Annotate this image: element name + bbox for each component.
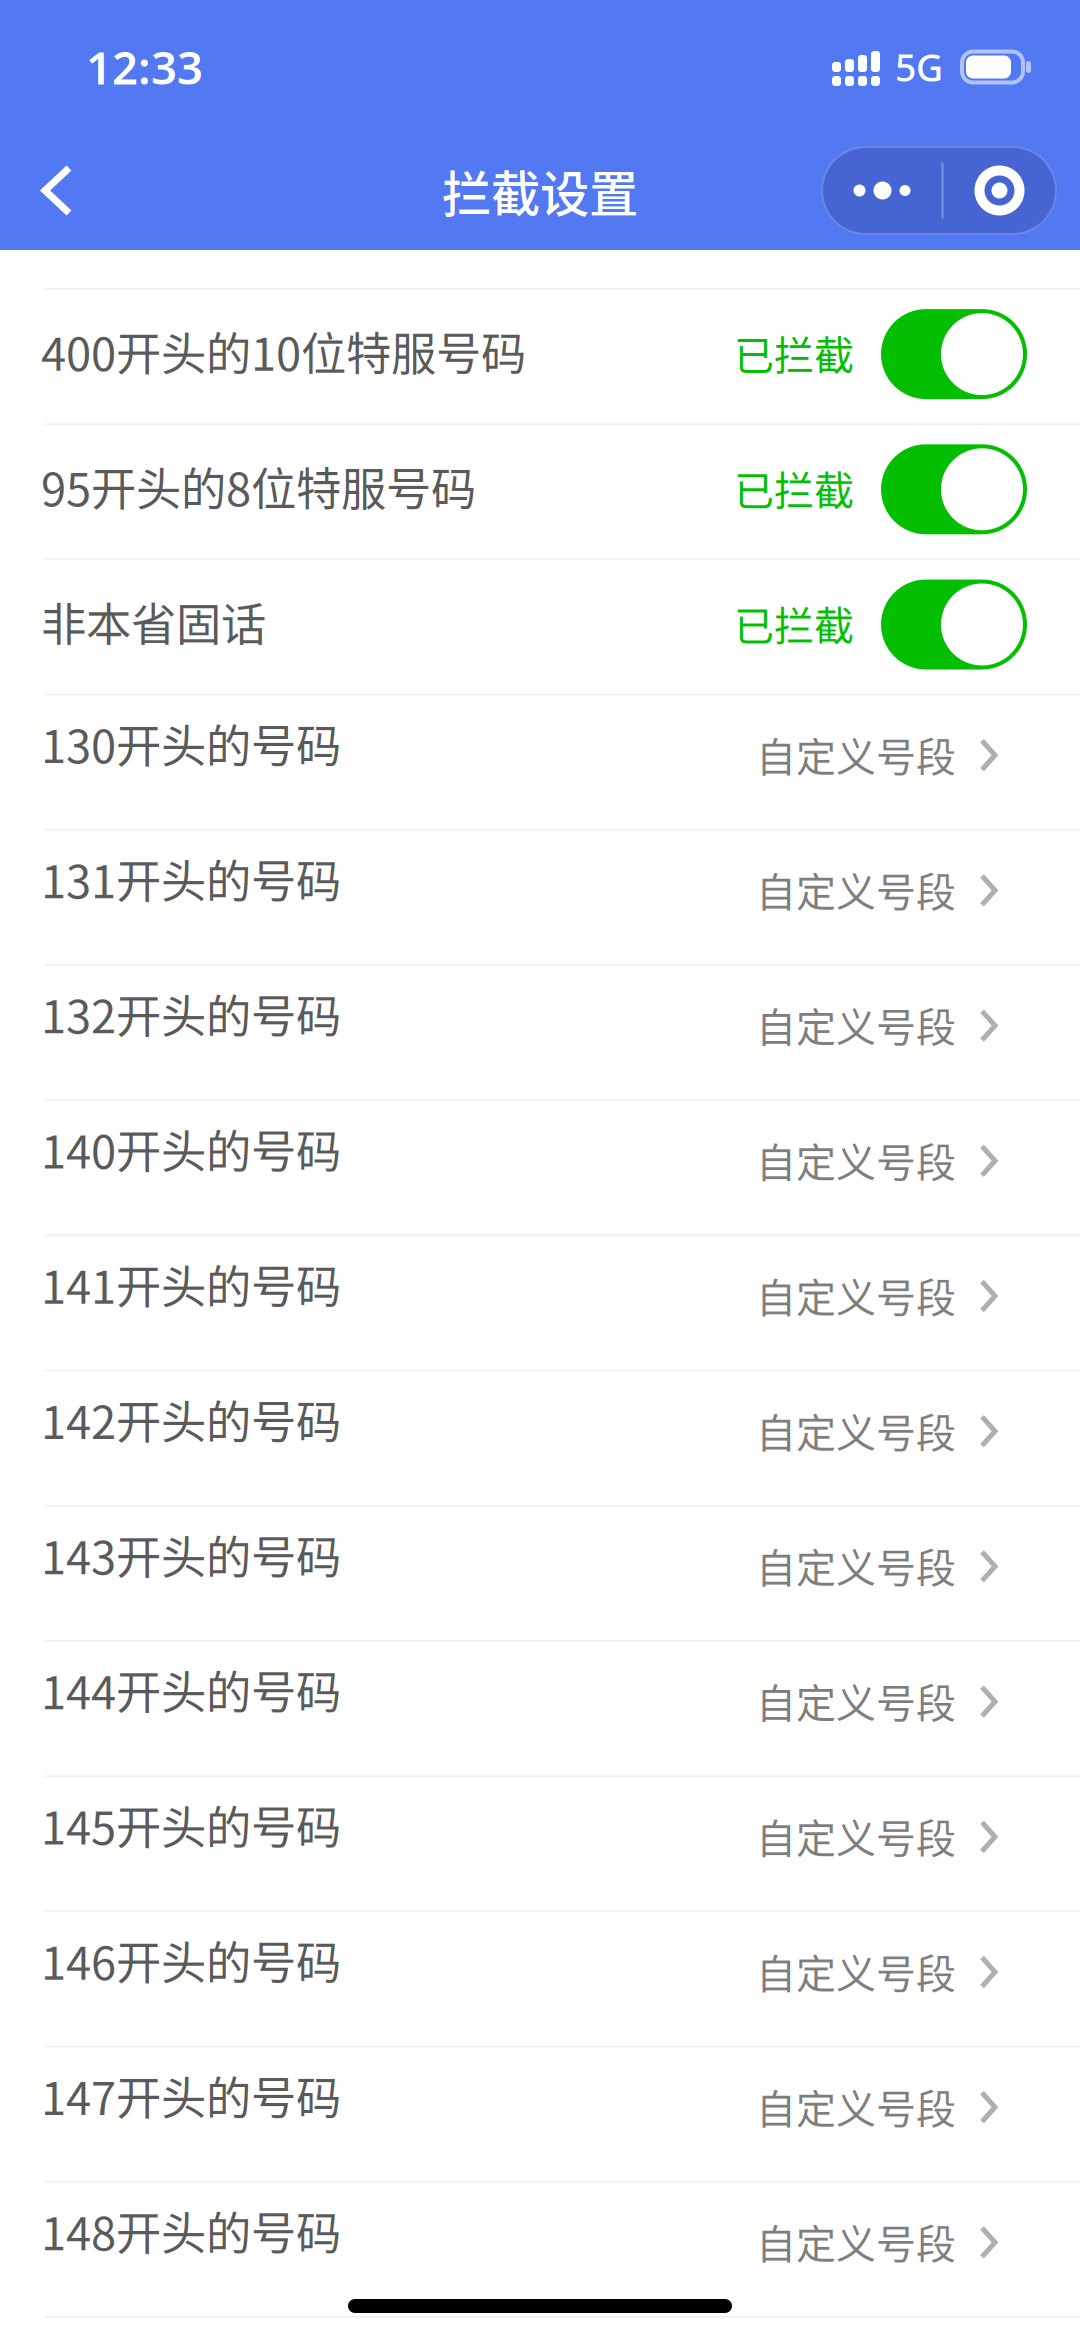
- staticText: 95开头的8位特服号码: [41, 453, 476, 519]
- button[interactable]: 147开头的号码: [0, 2048, 1080, 2181]
- staticText: 5G: [895, 42, 943, 92]
- button[interactable]: 148开头的号码: [0, 2183, 1080, 2316]
- staticText: 自定义号段: [756, 860, 956, 918]
- staticText: 12:33: [86, 37, 203, 97]
- button[interactable]: 140开头的号码: [0, 1101, 1080, 1234]
- staticText: 自定义号段: [756, 2212, 956, 2270]
- button[interactable]: 132开头的号码: [0, 966, 1080, 1099]
- staticText: 148开头的号码: [41, 2198, 341, 2263]
- button[interactable]: 131开头的号码: [0, 831, 1080, 964]
- staticText: 已拦截: [734, 459, 854, 517]
- staticText: 143开头的号码: [41, 1522, 341, 1587]
- button[interactable]: Back: [0, 142, 111, 239]
- staticText: 自定义号段: [756, 2077, 956, 2135]
- staticText: 自定义号段: [756, 1266, 956, 1324]
- button[interactable]: 400开头的10位特服号码: [0, 290, 1080, 423]
- button[interactable]: 145开头的号码: [0, 1777, 1080, 1910]
- staticText: 自定义号段: [756, 725, 956, 783]
- button[interactable]: Close mini program: [943, 147, 1055, 233]
- staticText: 自定义号段: [756, 1942, 956, 2000]
- button[interactable]: 141开头的号码: [0, 1236, 1080, 1370]
- staticText: 132开头的号码: [41, 981, 341, 1046]
- staticText: 非本省固话: [41, 589, 266, 654]
- staticText: 自定义号段: [756, 1131, 956, 1189]
- staticText: 自定义号段: [756, 1672, 956, 1729]
- staticText: 142开头的号码: [41, 1386, 341, 1452]
- staticText: 400开头的10位特服号码: [41, 318, 526, 384]
- staticText: 130开头的号码: [41, 710, 341, 776]
- staticText: 已拦截: [734, 594, 854, 652]
- button[interactable]: 142开头的号码: [0, 1372, 1080, 1505]
- staticText: 141开头的号码: [41, 1251, 341, 1317]
- button[interactable]: More options: [822, 147, 941, 233]
- staticText: 140开头的号码: [41, 1116, 341, 1182]
- staticText: 拦截设置: [442, 155, 638, 226]
- button[interactable]: 130开头的号码: [0, 696, 1080, 829]
- staticText: 131开头的号码: [41, 846, 341, 911]
- button[interactable]: 143开头的号码: [0, 1507, 1080, 1640]
- staticText: 144开头的号码: [41, 1657, 341, 1722]
- staticText: 145开头的号码: [41, 1792, 341, 1858]
- button[interactable]: 非本省固话: [0, 560, 1080, 694]
- staticText: 已拦截: [734, 324, 854, 381]
- staticText: 自定义号段: [756, 1536, 956, 1594]
- staticText: 146开头的号码: [41, 1927, 341, 1993]
- staticText: 自定义号段: [756, 996, 956, 1053]
- button[interactable]: 144开头的号码: [0, 1642, 1080, 1775]
- button[interactable]: 146开头的号码: [0, 1912, 1080, 2046]
- staticText: 147开头的号码: [41, 2062, 341, 2128]
- staticText: 自定义号段: [756, 1401, 956, 1459]
- staticText: 自定义号段: [756, 1807, 956, 1865]
- button[interactable]: 95开头的8位特服号码: [0, 425, 1080, 558]
